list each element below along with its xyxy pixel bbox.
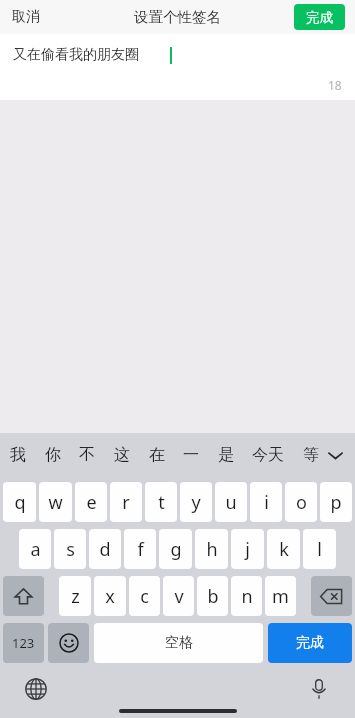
staticText: e: [86, 490, 97, 515]
staticText: m: [272, 584, 289, 609]
button[interactable]: 你: [43, 439, 63, 471]
staticText: 完成: [296, 634, 324, 652]
button[interactable]: b: [197, 576, 228, 616]
staticText: x: [105, 584, 115, 609]
button[interactable]: e: [75, 482, 107, 522]
staticText: n: [241, 584, 253, 609]
staticText: 一: [183, 445, 199, 465]
button[interactable]: 不: [77, 439, 97, 471]
button[interactable]: Shift: [3, 576, 44, 616]
button[interactable]: p: [320, 482, 352, 522]
staticText: 取消: [12, 8, 40, 26]
staticText: a: [30, 537, 41, 562]
staticText: 等: [303, 445, 319, 465]
staticText: y: [191, 490, 201, 515]
button[interactable]: r: [110, 482, 142, 522]
staticText: s: [66, 537, 75, 562]
staticText: u: [225, 490, 237, 515]
button[interactable]: t: [145, 482, 177, 522]
button[interactable]: 是: [216, 439, 236, 471]
button[interactable]: h: [195, 529, 228, 569]
staticText: 123: [12, 634, 35, 652]
button[interactable]: Emoji: [48, 623, 89, 663]
staticText: 今天: [252, 445, 284, 465]
button[interactable]: c: [129, 576, 160, 616]
button[interactable]: Collapse candidates: [321, 441, 349, 469]
staticText: j: [245, 537, 250, 562]
button[interactable]: 完成: [294, 4, 345, 30]
staticText: b: [207, 584, 219, 609]
staticText: l: [317, 537, 322, 562]
staticText: 完成: [306, 9, 333, 26]
button[interactable]: Voice input: [303, 673, 335, 705]
staticText: r: [122, 490, 130, 515]
button[interactable]: Backspace: [311, 576, 352, 616]
button[interactable]: y: [180, 482, 212, 522]
button[interactable]: g: [159, 529, 192, 569]
staticText: q: [14, 490, 26, 515]
staticText: g: [170, 537, 182, 562]
staticText: t: [158, 490, 165, 515]
button[interactable]: 一: [181, 439, 201, 471]
button[interactable]: o: [285, 482, 317, 522]
button[interactable]: x: [94, 576, 126, 616]
staticText: w: [48, 490, 63, 515]
staticText: 不: [79, 445, 95, 465]
staticText: z: [71, 584, 80, 609]
staticText: d: [99, 537, 111, 562]
staticText: 这: [114, 445, 130, 465]
staticText: h: [206, 537, 218, 562]
button[interactable]: 空格: [94, 623, 263, 663]
button[interactable]: l: [303, 529, 336, 569]
button[interactable]: 在: [147, 439, 167, 471]
button[interactable]: Switch language: [20, 673, 52, 705]
button[interactable]: m: [265, 576, 296, 616]
staticText: o: [296, 490, 307, 515]
button[interactable]: 等: [301, 439, 321, 471]
button[interactable]: 今天: [250, 439, 286, 471]
button[interactable]: 我: [8, 439, 28, 471]
staticText: v: [174, 584, 184, 609]
staticText: i: [264, 490, 269, 515]
button[interactable]: 123: [3, 623, 44, 663]
button[interactable]: a: [19, 529, 51, 569]
button[interactable]: 取消: [8, 3, 44, 31]
button[interactable]: d: [89, 529, 121, 569]
button[interactable]: n: [231, 576, 262, 616]
button[interactable]: z: [59, 576, 91, 616]
staticText: 又在偷看我的朋友圈: [13, 46, 139, 64]
button[interactable]: k: [267, 529, 300, 569]
button[interactable]: 完成: [268, 623, 352, 663]
button[interactable]: w: [39, 482, 72, 522]
staticText: 我: [10, 445, 26, 465]
staticText: f: [137, 537, 144, 562]
staticText: c: [140, 584, 149, 609]
staticText: 你: [45, 445, 61, 465]
staticText: 在: [149, 445, 165, 465]
button[interactable]: i: [250, 482, 282, 522]
staticText: 空格: [165, 634, 193, 652]
staticText: 设置个性签名: [134, 8, 221, 26]
button[interactable]: s: [54, 529, 86, 569]
button[interactable]: j: [231, 529, 264, 569]
button[interactable]: q: [3, 482, 36, 522]
staticText: 18: [328, 77, 342, 93]
button[interactable]: u: [215, 482, 247, 522]
staticText: k: [279, 537, 289, 562]
button[interactable]: 这: [112, 439, 132, 471]
button[interactable]: f: [124, 529, 156, 569]
button[interactable]: v: [163, 576, 194, 616]
staticText: p: [330, 490, 342, 515]
staticText: 是: [218, 445, 234, 465]
